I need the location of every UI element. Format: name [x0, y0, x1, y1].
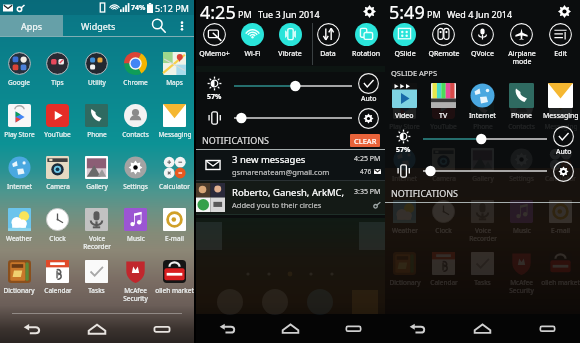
- staticText: Voice Recorder: [469, 226, 497, 243]
- button[interactable]: Data: [309, 22, 347, 66]
- button[interactable]: Video: [385, 80, 424, 125]
- staticText: NOTIFICATIONS: [391, 187, 459, 199]
- button[interactable]: Internet: [0, 156, 38, 208]
- button[interactable]: Auto: [352, 73, 385, 104]
- staticText: Roberto, Ganesh, ArkMC, Ab: [232, 186, 353, 199]
- button[interactable]: Messaging: [541, 80, 580, 125]
- button[interactable]: TV: [424, 80, 463, 125]
- staticText: QVoice: [471, 49, 494, 59]
- button[interactable]: Settings: [359, 2, 379, 20]
- button[interactable]: Home: [64, 314, 129, 343]
- button[interactable]: Roberto, Ganesh, ArkMC, Ab: [196, 181, 385, 214]
- button[interactable]: olleh market: [155, 260, 194, 312]
- staticText: Auto: [361, 94, 377, 104]
- staticText: QRemote: [428, 49, 460, 59]
- button[interactable]: Rotation: [347, 22, 385, 66]
- staticText: Tasks: [474, 278, 491, 287]
- button[interactable]: Voice Recorder: [77, 208, 116, 260]
- button[interactable]: QVoice: [463, 22, 502, 66]
- button[interactable]: Play Store: [0, 104, 38, 156]
- staticText: Utility: [88, 78, 106, 87]
- staticText: gsmarenateam@gmail.com: [232, 167, 330, 177]
- button[interactable]: Google: [0, 52, 38, 104]
- button[interactable]: Maps: [155, 52, 194, 104]
- button[interactable]: Recents: [129, 314, 194, 343]
- staticText: Gallery: [86, 182, 108, 191]
- staticText: olleh market: [541, 278, 580, 287]
- button[interactable]: Contacts: [116, 104, 155, 156]
- staticText: Gallery: [472, 174, 494, 183]
- staticText: Clock: [49, 234, 66, 243]
- button[interactable]: Back: [0, 314, 64, 343]
- button[interactable]: Calendar: [38, 260, 77, 312]
- staticText: 5:49: [389, 0, 425, 22]
- button[interactable]: Home: [450, 314, 515, 343]
- button[interactable]: Sound settings: [352, 108, 385, 129]
- button[interactable]: More options: [170, 15, 194, 36]
- button[interactable]: Internet: [463, 80, 502, 125]
- button[interactable]: Phone: [77, 104, 116, 156]
- button[interactable]: QRemote: [424, 22, 463, 66]
- button[interactable]: CLEAR: [350, 134, 380, 147]
- staticText: Airplane mode: [508, 49, 536, 66]
- staticText: McAfee Security: [509, 278, 534, 295]
- button[interactable]: Clock: [38, 208, 77, 260]
- staticText: Play Store: [4, 130, 35, 139]
- staticText: 4:25 PM: [354, 154, 381, 164]
- button[interactable]: Tips: [38, 52, 77, 104]
- staticText: Messaging: [158, 130, 192, 139]
- button[interactable]: Camera: [38, 156, 77, 208]
- button[interactable]: Music: [116, 208, 155, 260]
- button[interactable]: Vibrate: [271, 22, 309, 66]
- button[interactable]: Back: [196, 314, 259, 343]
- staticText: Clock: [435, 226, 452, 235]
- staticText: Edit: [554, 49, 567, 59]
- staticText: Internet: [469, 111, 496, 121]
- staticText: Calculator: [545, 174, 576, 183]
- button[interactable]: Home: [259, 314, 322, 343]
- button[interactable]: Calculator: [155, 156, 194, 208]
- button[interactable]: Settings: [554, 2, 574, 20]
- staticText: Calendar: [430, 278, 458, 287]
- button[interactable]: Airplane mode: [502, 22, 541, 66]
- button[interactable]: YouTube: [38, 104, 77, 156]
- button[interactable]: Tasks: [77, 260, 116, 312]
- button[interactable]: Phone: [502, 80, 541, 125]
- staticText: Weather: [6, 234, 32, 243]
- staticText: PM: [238, 8, 252, 20]
- button[interactable]: Utility: [77, 52, 116, 104]
- button[interactable]: McAfee Security: [116, 260, 155, 312]
- button[interactable]: Auto: [547, 126, 580, 157]
- button[interactable]: Search: [146, 15, 170, 36]
- staticText: Data: [320, 49, 336, 59]
- button[interactable]: E-mail: [155, 208, 194, 260]
- button[interactable]: Chrome: [116, 52, 155, 104]
- button[interactable]: Settings: [116, 156, 155, 208]
- staticText: YouTube: [430, 122, 457, 131]
- button[interactable]: Dictionary: [0, 260, 38, 312]
- staticText: Music: [513, 226, 531, 235]
- button[interactable]: Recent apps: [322, 314, 385, 343]
- button[interactable]: QSlide: [385, 22, 424, 66]
- staticText: Messaging: [544, 122, 578, 131]
- staticText: Contacts: [508, 122, 535, 131]
- button[interactable]: Sound settings: [547, 161, 580, 182]
- button[interactable]: Apps: [0, 15, 63, 36]
- button[interactable]: 3 new messages: [196, 150, 385, 180]
- button[interactable]: Messaging: [155, 104, 194, 156]
- button[interactable]: Back: [385, 314, 450, 343]
- button[interactable]: Weather: [0, 208, 38, 260]
- staticText: Added you to their circles: [232, 200, 322, 210]
- staticText: Play Store: [389, 122, 420, 131]
- button[interactable]: Edit: [541, 22, 580, 66]
- staticText: 57%: [396, 145, 411, 155]
- button[interactable]: Widgets: [63, 15, 133, 36]
- button[interactable]: Gallery: [77, 156, 116, 208]
- button[interactable]: Recent apps: [515, 314, 580, 343]
- staticText: QMemo+: [199, 49, 230, 59]
- staticText: QSLIDE APPS: [391, 68, 438, 78]
- button[interactable]: QMemo+: [196, 22, 233, 66]
- button[interactable]: Wi-Fi: [233, 22, 271, 66]
- staticText: TV: [439, 111, 448, 121]
- staticText: Settings: [123, 182, 148, 191]
